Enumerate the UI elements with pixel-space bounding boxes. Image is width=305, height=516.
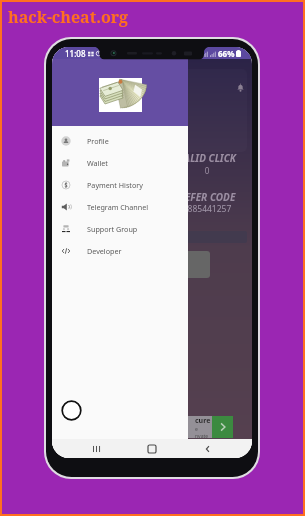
staticText: 66% [218,48,235,59]
staticText: Wallet [87,158,108,168]
staticText: cure [195,416,211,426]
staticText: 0 [137,165,252,176]
button[interactable]: Back [197,439,219,458]
button[interactable]: Home [141,439,163,458]
button[interactable]: Support Group [52,218,188,240]
staticText: Profile [87,136,109,146]
staticText: Payment History [87,180,143,190]
button[interactable]: Wallet [52,152,188,174]
staticText: Support Group [87,224,138,234]
staticText: VALID CLICK [137,151,252,165]
other: Notifications [236,83,245,92]
button[interactable]: Recents [86,439,108,458]
staticText: e [195,426,198,433]
staticText: REFER CODE [137,190,252,204]
staticText: hack-cheat.org [8,6,129,28]
staticText: Developer [87,246,122,256]
staticText: Telegram Channel [87,202,149,212]
button[interactable]: Telegram Channel [52,196,188,218]
staticText: 6885441257 [137,203,252,215]
staticText: nvate [195,433,209,438]
button[interactable]: Developer [52,240,188,262]
staticText: 11:08 [65,48,86,59]
button[interactable]: Profile [52,130,188,152]
button[interactable]: Payment History [52,174,188,196]
